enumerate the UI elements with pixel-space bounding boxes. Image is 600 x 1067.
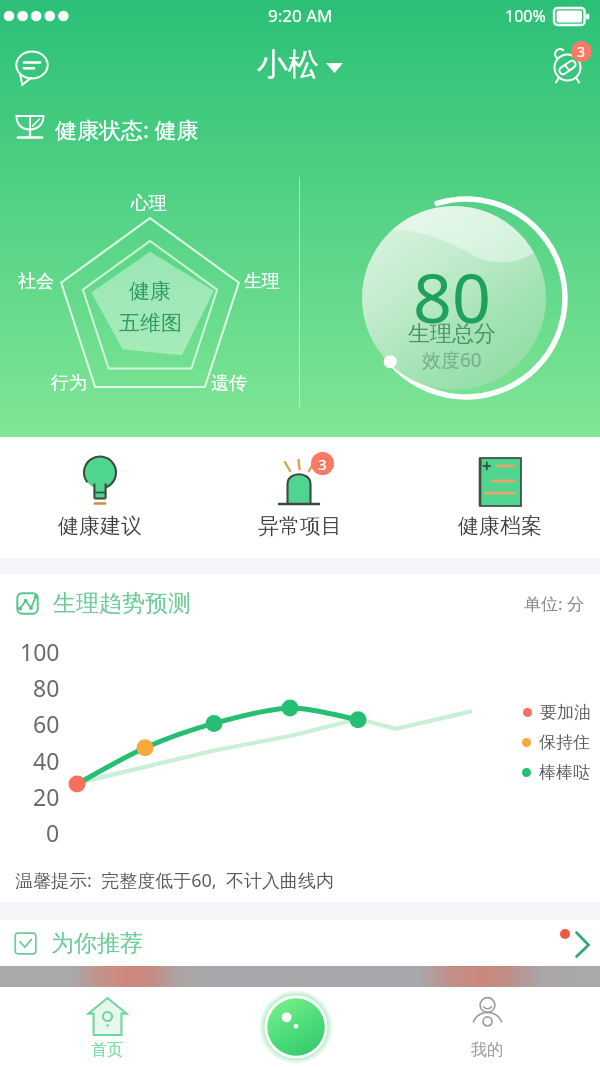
staticText: 20: [33, 781, 60, 811]
staticText: 要加油: [540, 702, 591, 723]
staticText: 80: [413, 250, 491, 343]
staticText: 五维图: [119, 310, 182, 336]
staticText: 社会: [18, 270, 54, 293]
staticText: 异常项目: [258, 513, 342, 539]
button[interactable]: 3: [200, 455, 400, 539]
staticText: 100%: [505, 5, 546, 27]
button[interactable]: 小松: [253, 42, 347, 87]
staticText: 遗传: [211, 372, 247, 395]
staticText: 生理总分: [408, 320, 496, 348]
staticText: 心理: [131, 192, 167, 215]
button[interactable]: 健康档案: [400, 455, 600, 539]
staticText: 效度60: [422, 347, 482, 373]
staticText: 棒棒哒: [539, 762, 590, 783]
staticText: 健康: [129, 278, 171, 304]
staticText: 保持住: [539, 732, 590, 753]
staticText: 温馨提示: 完整度低于60, 不计入曲线内: [15, 868, 334, 893]
staticText: 小松: [257, 45, 319, 84]
staticText: 单位: 分: [524, 592, 584, 615]
staticText: 60: [33, 708, 60, 738]
staticText: 80: [33, 672, 60, 702]
button[interactable]: Assistant: [260, 991, 332, 1063]
staticText: 我的: [471, 1040, 503, 1060]
staticText: 健康建议: [58, 513, 142, 539]
staticText: 100: [20, 636, 60, 666]
staticText: 行为: [51, 372, 87, 395]
staticText: 生理趋势预测: [53, 589, 191, 618]
staticText: 健康档案: [458, 513, 542, 539]
staticText: 40: [33, 745, 60, 775]
staticText: 9:20 AM: [268, 4, 333, 27]
button[interactable]: 我的: [447, 987, 527, 1067]
button[interactable]: 健康建议: [0, 455, 200, 539]
button[interactable]: Reminders: [545, 38, 595, 88]
staticText: 健康状态: 健康: [55, 114, 199, 144]
button[interactable]: Messages: [10, 43, 54, 87]
staticText: 首页: [91, 1040, 123, 1060]
button[interactable]: 为你推荐: [0, 920, 600, 966]
staticText: 0: [46, 817, 60, 847]
staticText: 为你推荐: [51, 929, 143, 958]
button[interactable]: 首页: [67, 987, 147, 1067]
staticText: 3: [318, 454, 327, 474]
staticText: 生理: [244, 270, 280, 293]
staticText: 3: [577, 42, 586, 61]
